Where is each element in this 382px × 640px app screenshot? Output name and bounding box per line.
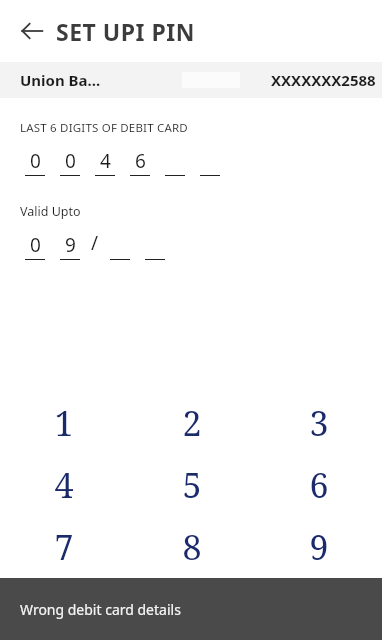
staticText: 7: [54, 524, 74, 570]
button[interactable]: 0: [128, 578, 255, 640]
staticText: 0: [30, 148, 41, 172]
button[interactable]: 5: [128, 454, 255, 516]
button[interactable]: 8: [128, 516, 255, 578]
staticText: 4: [54, 462, 74, 508]
staticText: 9: [65, 232, 76, 256]
button[interactable]: 3: [255, 392, 382, 454]
button[interactable]: 6: [255, 454, 382, 516]
button[interactable]: 9: [255, 516, 382, 578]
staticText: 9: [309, 524, 329, 570]
staticText: 3: [309, 400, 329, 446]
staticText: 1: [54, 400, 74, 446]
staticText: XXXXXXX2588: [271, 70, 376, 90]
staticText: 6: [309, 462, 329, 508]
button[interactable]: 4: [0, 454, 128, 516]
button[interactable]: Back: [14, 13, 50, 49]
staticText: 5: [182, 462, 202, 508]
staticText: SET UPI PIN: [56, 16, 195, 47]
staticText: 0: [30, 232, 41, 256]
staticText: /: [91, 230, 99, 256]
staticText: 2: [182, 400, 202, 446]
staticText: Union Ba...: [20, 70, 101, 90]
button[interactable]: Wrong debit card details: [0, 578, 382, 640]
button[interactable]: 1: [0, 392, 128, 454]
button[interactable]: Union Ba...: [0, 62, 382, 98]
button[interactable]: 2: [128, 392, 255, 454]
button[interactable]: 7: [0, 516, 128, 578]
button[interactable]: Backspace: [0, 578, 128, 640]
staticText: 8: [182, 524, 202, 570]
staticText: 6: [135, 148, 146, 172]
staticText: 4: [100, 148, 111, 172]
staticText: 0: [65, 148, 76, 172]
staticText: Valid Upto: [20, 203, 81, 220]
staticText: Wrong debit card details: [20, 600, 181, 619]
staticText: LAST 6 DIGITS OF DEBIT CARD: [20, 120, 188, 136]
